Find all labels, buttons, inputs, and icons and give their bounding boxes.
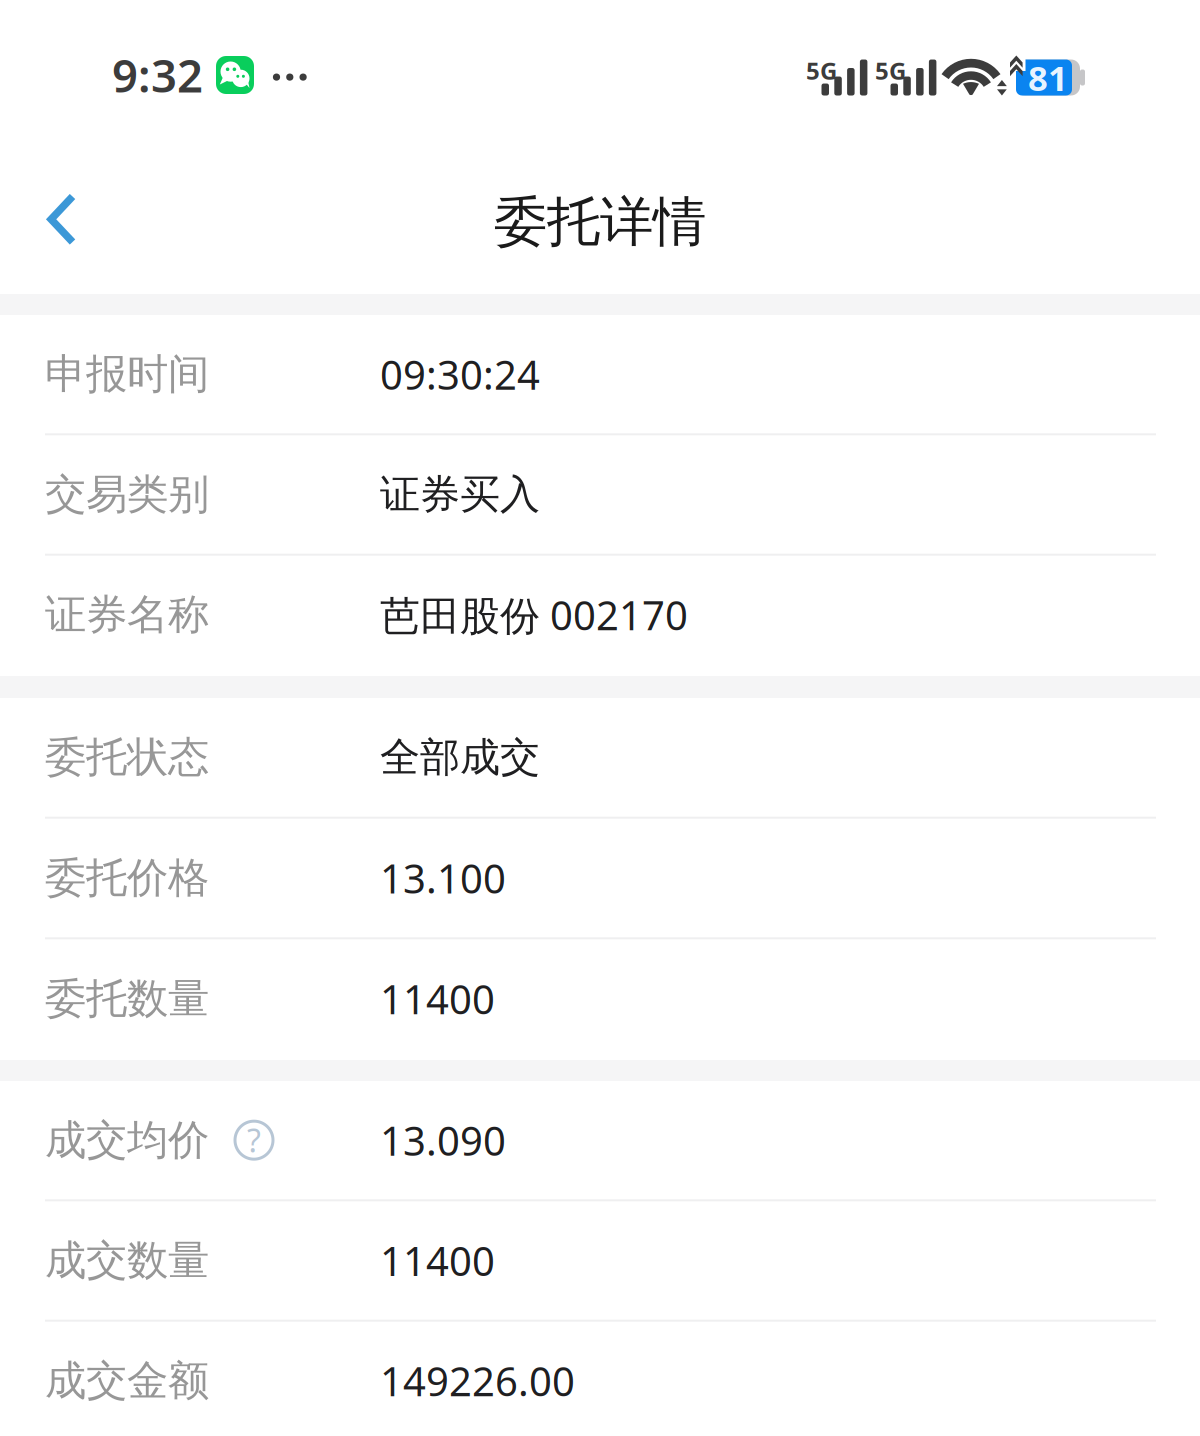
staticText: 11400 — [380, 1234, 495, 1287]
staticText: 81 — [1028, 54, 1068, 100]
staticText: 证券买入 — [380, 470, 540, 519]
button[interactable]: 返回 — [0, 177, 118, 267]
staticText: 成交金额 — [45, 1355, 209, 1406]
staticText: 申报时间 — [45, 349, 209, 400]
staticText: 委托详情 — [494, 189, 706, 255]
staticText: 成交数量 — [45, 1235, 209, 1286]
staticText: 全部成交 — [380, 733, 540, 782]
staticText: 芭田股份 002170 — [380, 588, 688, 641]
staticText: 09:30:24 — [380, 348, 540, 401]
staticText: 委托价格 — [45, 853, 209, 903]
staticText: 13.090 — [380, 1114, 506, 1167]
staticText: 149226.00 — [380, 1354, 575, 1407]
staticText: 13.100 — [380, 851, 506, 904]
button[interactable]: 成交均价说明 — [234, 1120, 274, 1160]
staticText: 9:32 — [112, 45, 203, 105]
staticText: 5G — [875, 54, 906, 86]
staticText: 5G — [806, 54, 837, 86]
staticText: ? — [247, 1119, 261, 1161]
staticText: 交易类别 — [45, 469, 209, 520]
staticText: 委托数量 — [45, 973, 209, 1024]
staticText: 成交均价 — [45, 1115, 209, 1166]
staticText: 证券名称 — [45, 589, 209, 640]
staticText: 委托状态 — [45, 732, 209, 783]
staticText: 11400 — [380, 972, 495, 1025]
